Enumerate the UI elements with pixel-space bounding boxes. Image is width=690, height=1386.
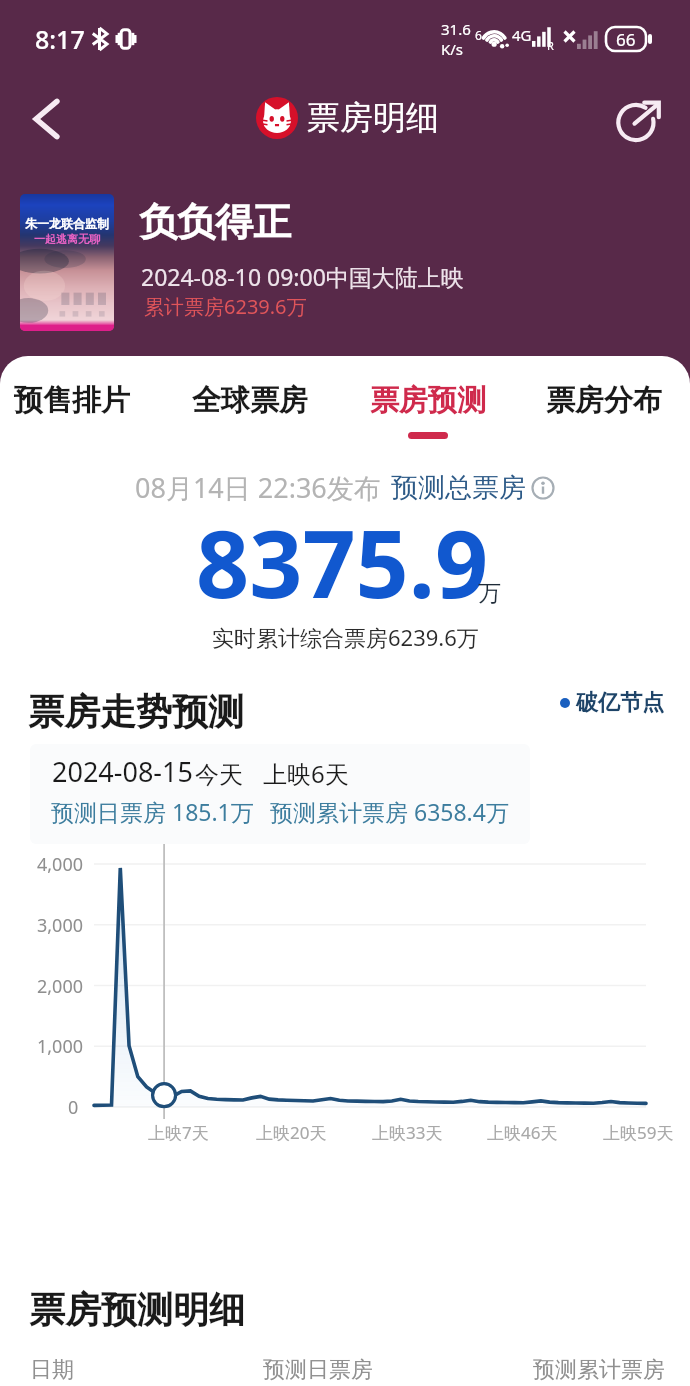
staticText: 票房分布 <box>546 382 662 419</box>
staticText: 预测日票房 185.1万 <box>51 796 254 827</box>
staticText: 上映7天 <box>148 1121 209 1144</box>
staticText: 预测累计票房 <box>533 1356 665 1384</box>
staticText: 负负得正 <box>139 198 291 246</box>
staticText: 票房预测 <box>370 382 486 419</box>
staticText: 上映59天 <box>603 1121 674 1144</box>
button[interactable]: 票房分布 <box>518 356 690 442</box>
button[interactable]: Share <box>610 90 668 148</box>
staticText: 上映20天 <box>256 1121 327 1144</box>
staticText: 全球票房 <box>192 382 308 419</box>
staticText: 3,000 <box>37 913 84 938</box>
staticText: 票房预测明细 <box>29 1287 245 1332</box>
staticText: 累计票房6239.6万 <box>144 293 307 320</box>
staticText: 8375.9 <box>196 499 489 626</box>
staticText: 预测日票房 <box>263 1356 373 1384</box>
staticText: 万 <box>478 579 501 608</box>
staticText: 66 <box>616 28 636 51</box>
staticText: 1,000 <box>37 1034 84 1059</box>
staticText: 4,000 <box>37 852 84 877</box>
staticText: 4G <box>512 25 532 45</box>
staticText: 31.6 <box>441 19 471 39</box>
staticText: 预测总票房 <box>391 471 526 505</box>
staticText: R <box>547 38 554 53</box>
staticText: 朱一龙联合监制 <box>25 216 109 231</box>
staticText: 日期 <box>30 1356 74 1384</box>
staticText: 2024-08-15 <box>52 753 193 790</box>
staticText: 实时累计综合票房6239.6万 <box>212 622 479 652</box>
staticText: K/s <box>441 39 464 59</box>
button[interactable]: Back <box>16 89 76 149</box>
button[interactable]: 票房预测 <box>342 356 514 442</box>
staticText: 8:17 <box>35 22 85 56</box>
button[interactable]: 预售排片 <box>0 356 158 442</box>
staticText: 上映6天 <box>263 757 349 790</box>
staticText: 2,000 <box>37 974 84 999</box>
staticText: 一起逃离无聊 <box>34 232 100 246</box>
button[interactable]: 全球票房 <box>164 356 336 442</box>
staticText: 6 <box>475 27 482 43</box>
staticText: 2024-08-10 09:00中国大陆上映 <box>141 261 464 292</box>
staticText: 预测累计票房 6358.4万 <box>270 796 509 827</box>
staticText: 票房明细 <box>307 97 439 139</box>
staticText: 上映46天 <box>487 1121 558 1144</box>
staticText: 08月14日 22:36发布 <box>135 469 381 506</box>
staticText: 0 <box>68 1095 79 1120</box>
staticText: 票房走势预测 <box>28 689 244 734</box>
staticText: 今天 <box>195 760 243 790</box>
staticText: 预售排片 <box>14 382 130 419</box>
staticText: 破亿节点 <box>576 689 664 717</box>
staticText: 上映33天 <box>372 1121 443 1144</box>
